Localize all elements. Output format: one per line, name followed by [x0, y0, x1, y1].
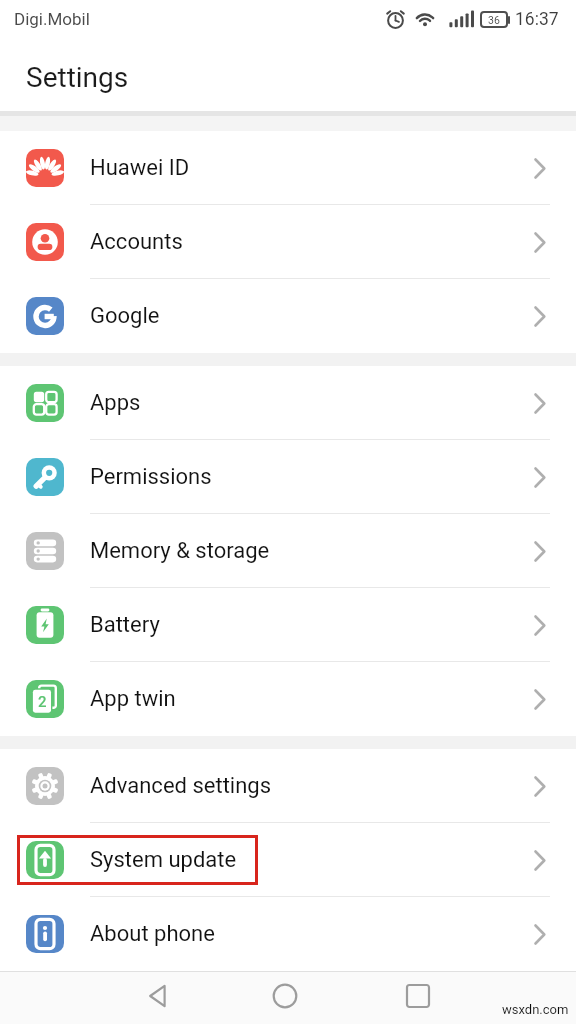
button[interactable]: Permissions: [0, 440, 576, 514]
button[interactable]: Huawei ID: [0, 131, 576, 205]
staticText: System update: [90, 847, 237, 873]
button[interactable]: Google: [0, 279, 576, 353]
staticText: Memory & storage: [90, 538, 270, 564]
button[interactable]: About phone: [0, 897, 576, 971]
button[interactable]: [405, 983, 431, 1009]
staticText: About phone: [90, 921, 215, 947]
staticText: 2: [38, 693, 47, 711]
button[interactable]: 2: [0, 662, 576, 736]
staticText: Permissions: [90, 464, 212, 490]
staticText: App twin: [90, 686, 176, 712]
button[interactable]: [147, 983, 168, 1009]
staticText: 36: [488, 14, 500, 26]
button[interactable]: Accounts: [0, 205, 576, 279]
staticText: Accounts: [90, 229, 183, 255]
staticText: Huawei ID: [90, 155, 190, 181]
button[interactable]: Battery: [0, 588, 576, 662]
staticText: Apps: [90, 390, 141, 416]
button[interactable]: Memory & storage: [0, 514, 576, 588]
button[interactable]: [272, 983, 298, 1009]
button[interactable]: System update: [0, 823, 576, 897]
staticText: wsxdn.com: [502, 1002, 569, 1017]
button[interactable]: Apps: [0, 366, 576, 440]
staticText: Digi.Mobil: [14, 9, 90, 29]
button[interactable]: Advanced settings: [0, 749, 576, 823]
staticText: Settings: [26, 61, 129, 94]
staticText: Battery: [90, 612, 160, 638]
staticText: 16:37: [515, 9, 559, 30]
staticText: Google: [90, 303, 160, 329]
staticText: Advanced settings: [90, 773, 272, 799]
